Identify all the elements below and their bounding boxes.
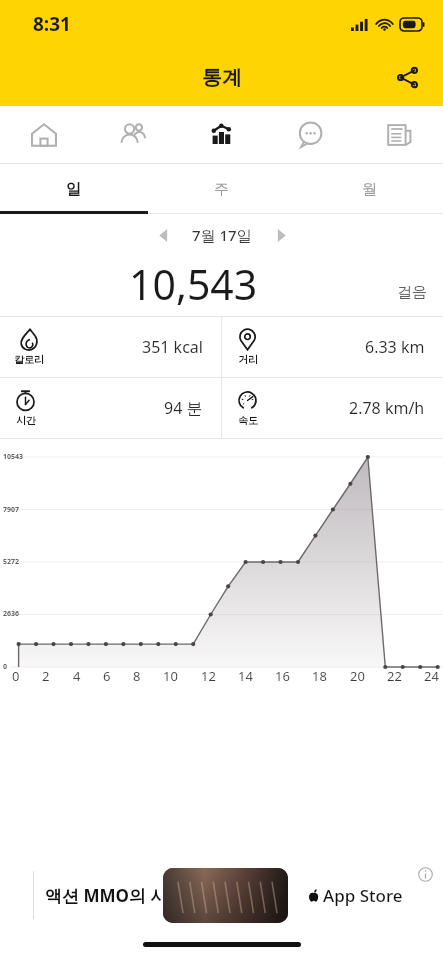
staticText: 6.33 km — [365, 336, 425, 358]
staticText: 8 — [133, 667, 141, 685]
staticText: 2 — [42, 667, 50, 685]
staticText: 칼로리 — [14, 353, 44, 366]
staticText: 4 — [73, 667, 81, 685]
staticText: 351 kcal — [142, 336, 203, 358]
button[interactable]: 속도 — [222, 378, 443, 438]
staticText: 일 — [66, 180, 81, 199]
staticText: 16 — [275, 667, 290, 685]
button[interactable]: Friends — [88, 106, 176, 164]
button[interactable]: Ad info — [415, 864, 435, 884]
staticText: 14 — [238, 667, 253, 685]
staticText: 7907 — [3, 505, 20, 515]
button[interactable]: 주 — [147, 164, 295, 214]
button[interactable]: 월 — [295, 164, 443, 214]
staticText: 통계 — [202, 65, 242, 90]
staticText: 거리 — [238, 353, 258, 366]
staticText: 월 — [362, 180, 377, 199]
button[interactable]: 일 — [0, 164, 147, 214]
button[interactable]: 칼로리 — [0, 317, 221, 377]
staticText: 18 — [312, 667, 327, 685]
staticText: 6 — [103, 667, 111, 685]
staticText: 2636 — [3, 609, 20, 619]
staticText: 0 — [12, 667, 20, 685]
staticText: 94 분 — [164, 397, 203, 419]
staticText: 2.78 km/h — [349, 397, 425, 419]
staticText: 시간 — [16, 414, 36, 427]
staticText: 7월 17일 — [192, 225, 252, 245]
button[interactable]: Previous day — [146, 218, 180, 252]
staticText: 20 — [350, 667, 365, 685]
staticText: 주 — [214, 180, 229, 199]
button[interactable]: 거리 — [222, 317, 443, 377]
staticText: 10 — [163, 667, 178, 685]
staticText: 24 — [424, 667, 439, 685]
staticText: 액션 MMO의 시작 — [45, 884, 185, 907]
staticText: 속도 — [238, 414, 258, 427]
staticText: 10,543 — [129, 256, 258, 312]
staticText: 10543 — [3, 452, 24, 462]
button[interactable]: Home — [0, 106, 88, 164]
staticText: 걸음 — [397, 283, 427, 302]
button[interactable]: 액션 MMO의 시작 — [0, 858, 443, 932]
staticText: 5272 — [3, 557, 20, 567]
staticText: App Store — [323, 884, 403, 907]
staticText: 8:31 — [33, 11, 71, 37]
staticText: 22 — [387, 667, 402, 685]
button[interactable]: Next day — [264, 218, 298, 252]
button[interactable]: Chat — [265, 106, 354, 164]
staticText: 0 — [3, 662, 8, 672]
button[interactable]: 시간 — [0, 378, 221, 438]
button[interactable]: Statistics — [176, 106, 265, 164]
button[interactable]: News — [354, 106, 443, 164]
staticText: 12 — [201, 667, 216, 685]
button[interactable]: Share — [385, 55, 429, 99]
